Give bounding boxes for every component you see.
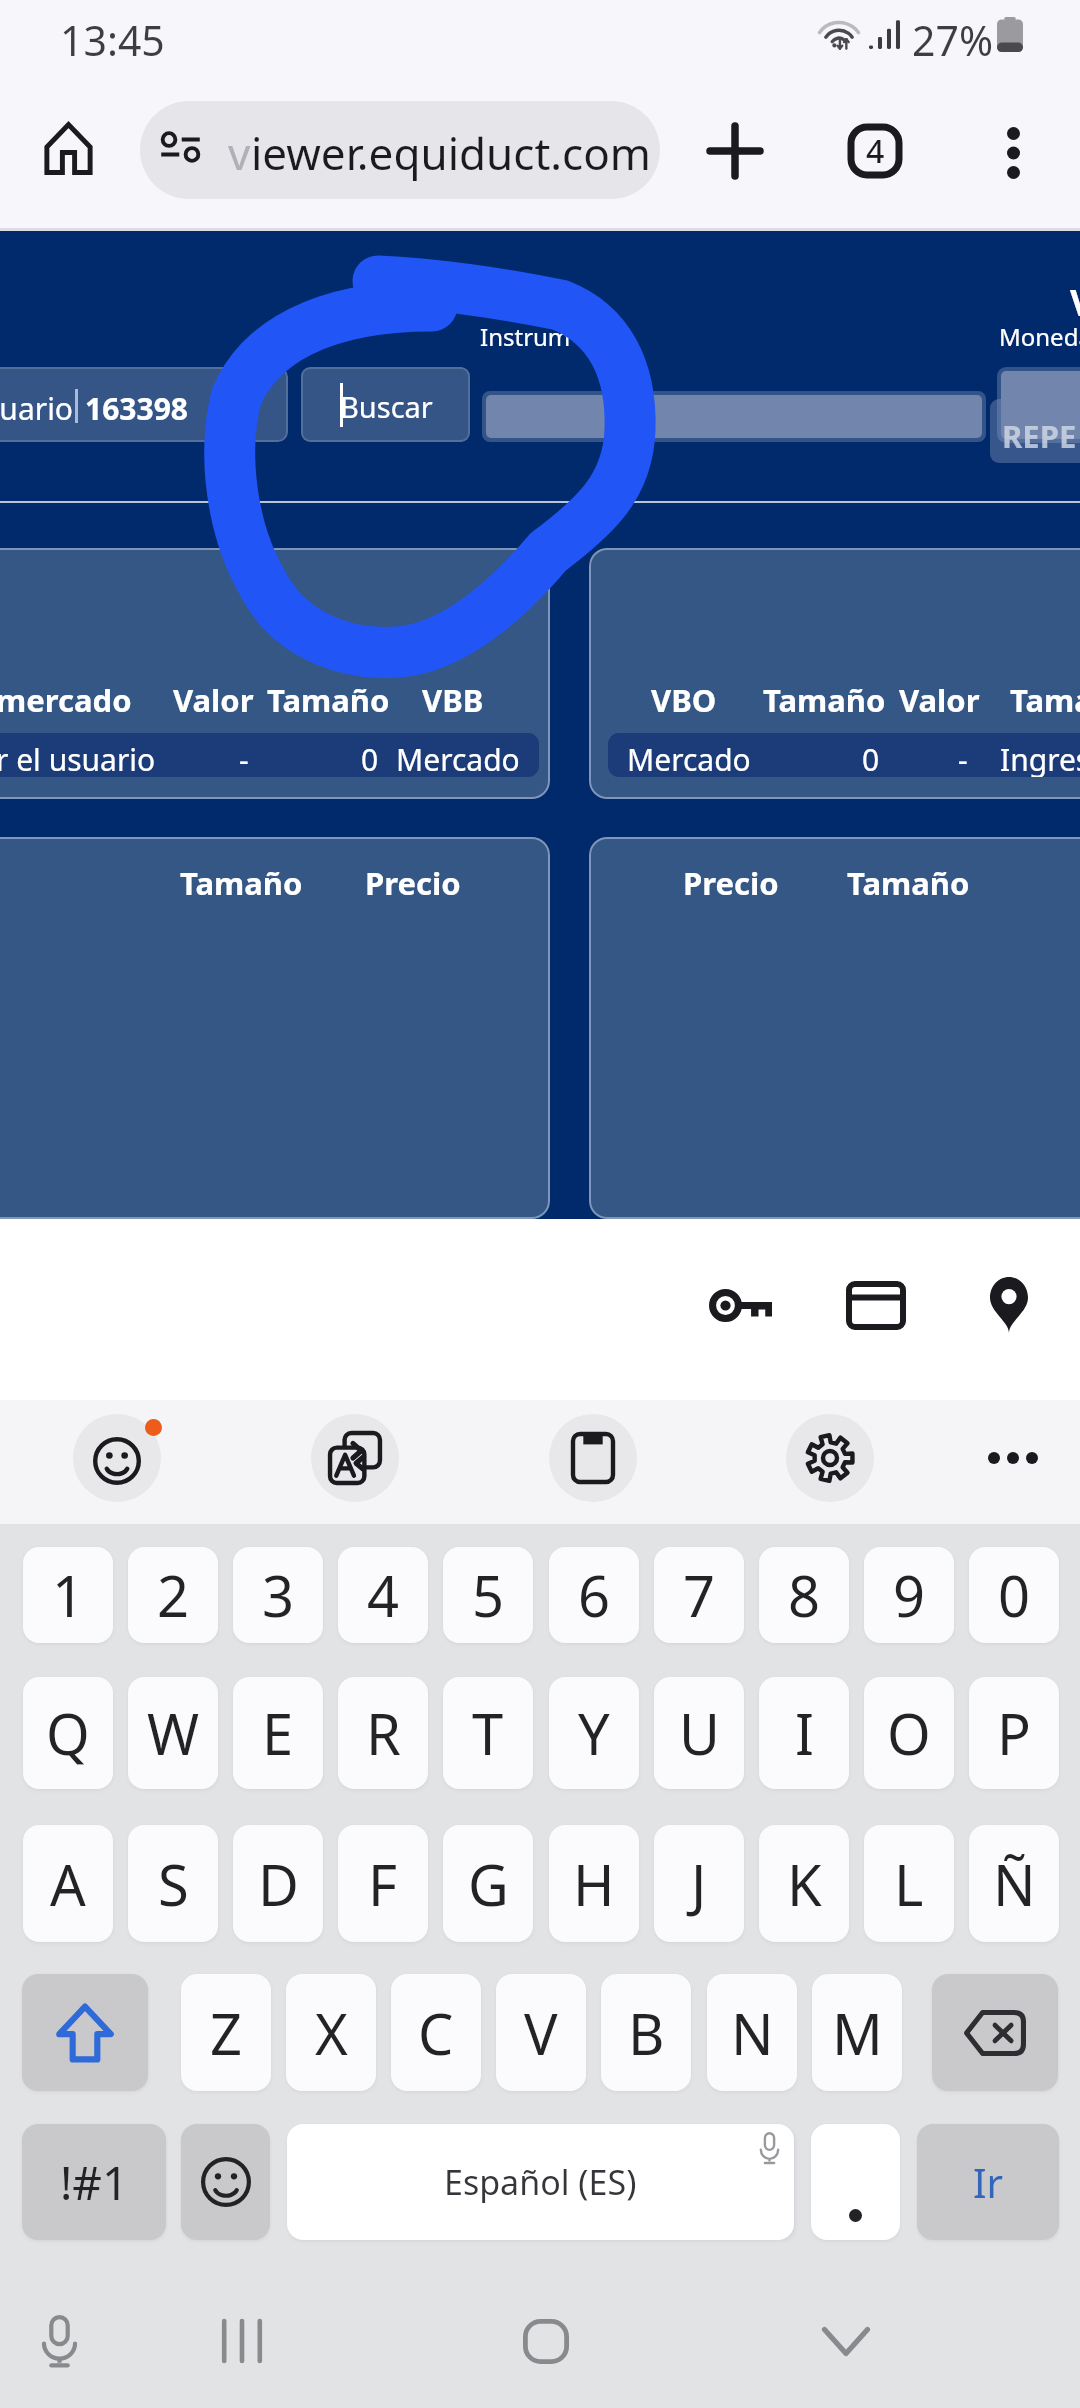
- button[interactable]: D: [233, 1825, 323, 1942]
- button[interactable]: Ir: [917, 2124, 1059, 2240]
- button[interactable]: suario: [0, 367, 288, 442]
- staticText: Precio: [683, 862, 779, 904]
- staticText: P: [997, 1695, 1031, 1771]
- button[interactable]: L: [864, 1825, 954, 1942]
- staticText: 8: [788, 1557, 821, 1633]
- staticText: -: [958, 739, 968, 777]
- staticText: REPE: [1002, 415, 1077, 457]
- button[interactable]: !#1: [22, 2124, 166, 2240]
- staticText: Ir: [973, 2155, 1004, 2209]
- button[interactable]: Addresses: [965, 1261, 1053, 1349]
- button[interactable]: T: [443, 1677, 533, 1789]
- button[interactable]: U: [654, 1677, 744, 1789]
- button[interactable]: Hide keyboard: [796, 2291, 896, 2391]
- staticText: 2: [157, 1557, 190, 1633]
- staticText: H: [573, 1846, 615, 1922]
- button[interactable]: Y: [549, 1677, 639, 1789]
- staticText: Tamaño: [180, 862, 303, 904]
- button[interactable]: 9: [864, 1547, 954, 1643]
- button[interactable]: Emoji: [181, 2124, 270, 2240]
- staticText: 1: [52, 1557, 85, 1633]
- button[interactable]: Home: [496, 2291, 596, 2391]
- button[interactable]: Translate: [311, 1414, 399, 1502]
- button[interactable]: Clipboard: [549, 1414, 637, 1502]
- button[interactable]: Home: [22, 102, 114, 194]
- button[interactable]: B: [601, 1974, 691, 2091]
- button[interactable]: Voice input: [10, 2295, 110, 2395]
- button[interactable]: M: [812, 1974, 902, 2091]
- staticText: Ingres: [1000, 739, 1080, 777]
- button[interactable]: Payment methods: [832, 1261, 920, 1349]
- staticText: 13:45: [60, 12, 165, 68]
- button[interactable]: F: [338, 1825, 428, 1942]
- button[interactable]: Español (ES): [287, 2124, 794, 2240]
- button[interactable]: G: [443, 1825, 533, 1942]
- button[interactable]: More: [969, 1414, 1057, 1502]
- staticText: B: [628, 1995, 665, 2071]
- button[interactable]: J: [654, 1825, 744, 1942]
- staticText: VBB: [422, 679, 484, 721]
- staticText: A: [50, 1846, 86, 1922]
- button[interactable]: N: [707, 1974, 797, 2091]
- staticText: Ñ: [993, 1846, 1036, 1922]
- staticText: E: [262, 1695, 294, 1771]
- staticText: D: [258, 1846, 299, 1922]
- staticText: V: [1070, 278, 1080, 327]
- button[interactable]: Q: [23, 1677, 113, 1789]
- staticText: K: [787, 1846, 822, 1922]
- button[interactable]: O: [864, 1677, 954, 1789]
- staticText: O: [887, 1695, 931, 1771]
- staticText: N: [731, 1995, 774, 2071]
- button[interactable]: 1: [23, 1547, 113, 1643]
- staticText: VBO: [651, 679, 717, 721]
- button[interactable]: 5: [443, 1547, 533, 1643]
- button[interactable]: Shift: [22, 1974, 148, 2091]
- button[interactable]: 2: [128, 1547, 218, 1643]
- button[interactable]: Ñ: [969, 1825, 1059, 1942]
- staticText: Instrum: [480, 320, 571, 353]
- button[interactable]: Emoji: [73, 1414, 161, 1502]
- button[interactable]: W: [128, 1677, 218, 1789]
- button[interactable]: R: [338, 1677, 428, 1789]
- button[interactable]: S: [128, 1825, 218, 1942]
- button[interactable]: New tab: [690, 106, 780, 196]
- staticText: U: [679, 1695, 720, 1771]
- staticText: C: [418, 1995, 454, 2071]
- button[interactable]: Recent apps: [192, 2291, 292, 2391]
- staticText: mercado: [0, 679, 132, 721]
- button[interactable]: K: [759, 1825, 849, 1942]
- staticText: T: [472, 1695, 504, 1771]
- staticText: 6: [578, 1557, 611, 1633]
- button[interactable]: H: [549, 1825, 639, 1942]
- staticText: !#1: [60, 2151, 129, 2214]
- button[interactable]: Settings: [786, 1414, 874, 1502]
- button[interactable]: P: [969, 1677, 1059, 1789]
- staticText: 163398: [85, 388, 188, 429]
- staticText: suario: [0, 388, 74, 429]
- button[interactable]: 8: [759, 1547, 849, 1643]
- button[interactable]: [486, 395, 982, 438]
- button[interactable]: I: [759, 1677, 849, 1789]
- button[interactable]: 0: [969, 1547, 1059, 1643]
- button[interactable]: C: [391, 1974, 481, 2091]
- button[interactable]: Tabs: [830, 106, 920, 196]
- button[interactable]: 4: [338, 1547, 428, 1643]
- button[interactable]: 6: [549, 1547, 639, 1643]
- button[interactable]: Passwords: [696, 1261, 784, 1349]
- button[interactable]: 3: [233, 1547, 323, 1643]
- staticText: 5: [472, 1557, 505, 1633]
- button[interactable]: E: [233, 1677, 323, 1789]
- button[interactable]: Buscar: [301, 367, 470, 442]
- button[interactable]: V: [496, 1974, 586, 2091]
- button[interactable]: Backspace: [932, 1974, 1058, 2091]
- button[interactable]: [1001, 371, 1080, 439]
- button[interactable]: Z: [181, 1974, 271, 2091]
- button[interactable]: v: [140, 101, 660, 199]
- button[interactable]: 7: [654, 1547, 744, 1643]
- staticText: Tamaño: [763, 679, 886, 721]
- button[interactable]: X: [286, 1974, 376, 2091]
- button[interactable]: A: [23, 1825, 113, 1942]
- staticText: Tama: [1010, 679, 1080, 721]
- button[interactable]: Period: [811, 2124, 900, 2240]
- button[interactable]: More options: [970, 110, 1056, 196]
